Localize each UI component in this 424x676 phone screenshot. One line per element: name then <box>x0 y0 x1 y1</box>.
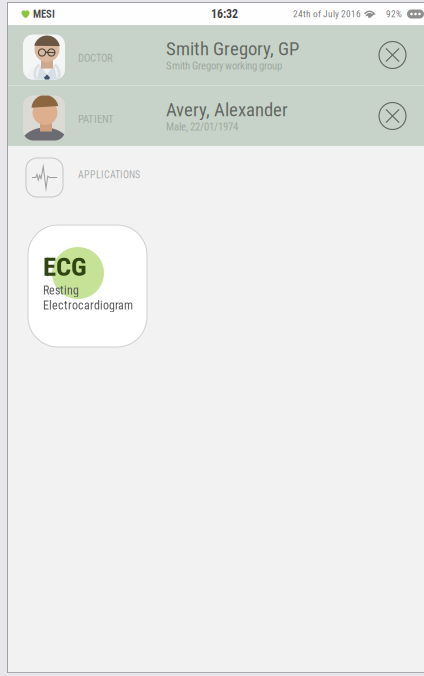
staticText: Male, 22/01/1974 <box>166 121 238 133</box>
button[interactable]: ECG <box>28 225 147 347</box>
staticText: DOCTOR <box>78 52 113 64</box>
staticText: 16:32 <box>211 7 238 21</box>
staticText: 92% <box>386 8 402 19</box>
staticText: Resting <box>43 283 79 297</box>
button[interactable]: PATIENT <box>8 86 424 146</box>
staticText: Smith Gregory, GP <box>166 38 299 60</box>
button[interactable]: DOCTOR <box>8 25 424 85</box>
staticText: PATIENT <box>78 113 114 125</box>
staticText: 24th of July 2016 <box>293 8 361 19</box>
staticText: Smith Gregory working group <box>166 60 282 72</box>
staticText: APPLICATIONS <box>78 169 140 181</box>
staticText: Electrocardiogram <box>43 298 133 312</box>
staticText: ECG <box>43 251 87 282</box>
staticText: MESI <box>33 8 55 20</box>
staticText: Avery, Alexander <box>166 99 288 121</box>
